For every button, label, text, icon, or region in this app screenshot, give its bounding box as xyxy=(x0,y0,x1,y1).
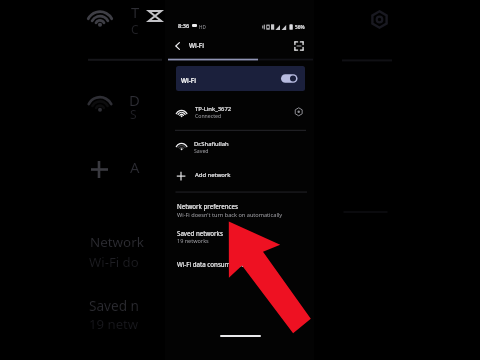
staticText: Wi-Fi data consumption xyxy=(177,260,246,268)
staticText: T xyxy=(131,2,140,22)
staticText: Saved xyxy=(194,147,209,154)
button[interactable] xyxy=(165,198,314,222)
button[interactable] xyxy=(165,255,314,275)
staticText: A xyxy=(130,157,140,177)
staticText: S xyxy=(130,106,137,122)
staticText: Network xyxy=(90,233,144,251)
staticText: 19 netw xyxy=(89,315,139,333)
button[interactable]: Wi-Fi xyxy=(176,66,305,91)
button[interactable] xyxy=(165,165,314,187)
staticText: HD xyxy=(199,24,206,30)
staticText: Wi-Fi do xyxy=(89,253,139,271)
staticText: Network preferences xyxy=(177,202,239,210)
staticText: Saved n xyxy=(89,296,139,315)
staticText: Connected xyxy=(195,112,222,119)
staticText: Wi-Fi xyxy=(189,41,204,50)
button[interactable] xyxy=(165,225,314,249)
staticText: Add network xyxy=(195,171,231,179)
staticText: 56% xyxy=(295,24,305,31)
staticText: TP-Link_3672 xyxy=(195,105,232,113)
staticText: Wi-Fi doesn't turn back on automatically xyxy=(177,211,283,219)
staticText: 8:36 xyxy=(178,22,190,30)
staticText: Saved networks xyxy=(177,229,223,237)
button[interactable] xyxy=(165,134,314,162)
staticText: D xyxy=(129,90,140,110)
button[interactable] xyxy=(165,98,314,128)
staticText: C xyxy=(131,21,139,37)
button[interactable]: Scan QR code to add a device xyxy=(291,38,307,54)
staticText: Wi-Fi xyxy=(181,76,196,85)
button[interactable]: Navigate up xyxy=(170,39,184,53)
staticText: 19 networks xyxy=(177,237,209,244)
staticText: Dr.Shafiullah xyxy=(194,140,229,148)
